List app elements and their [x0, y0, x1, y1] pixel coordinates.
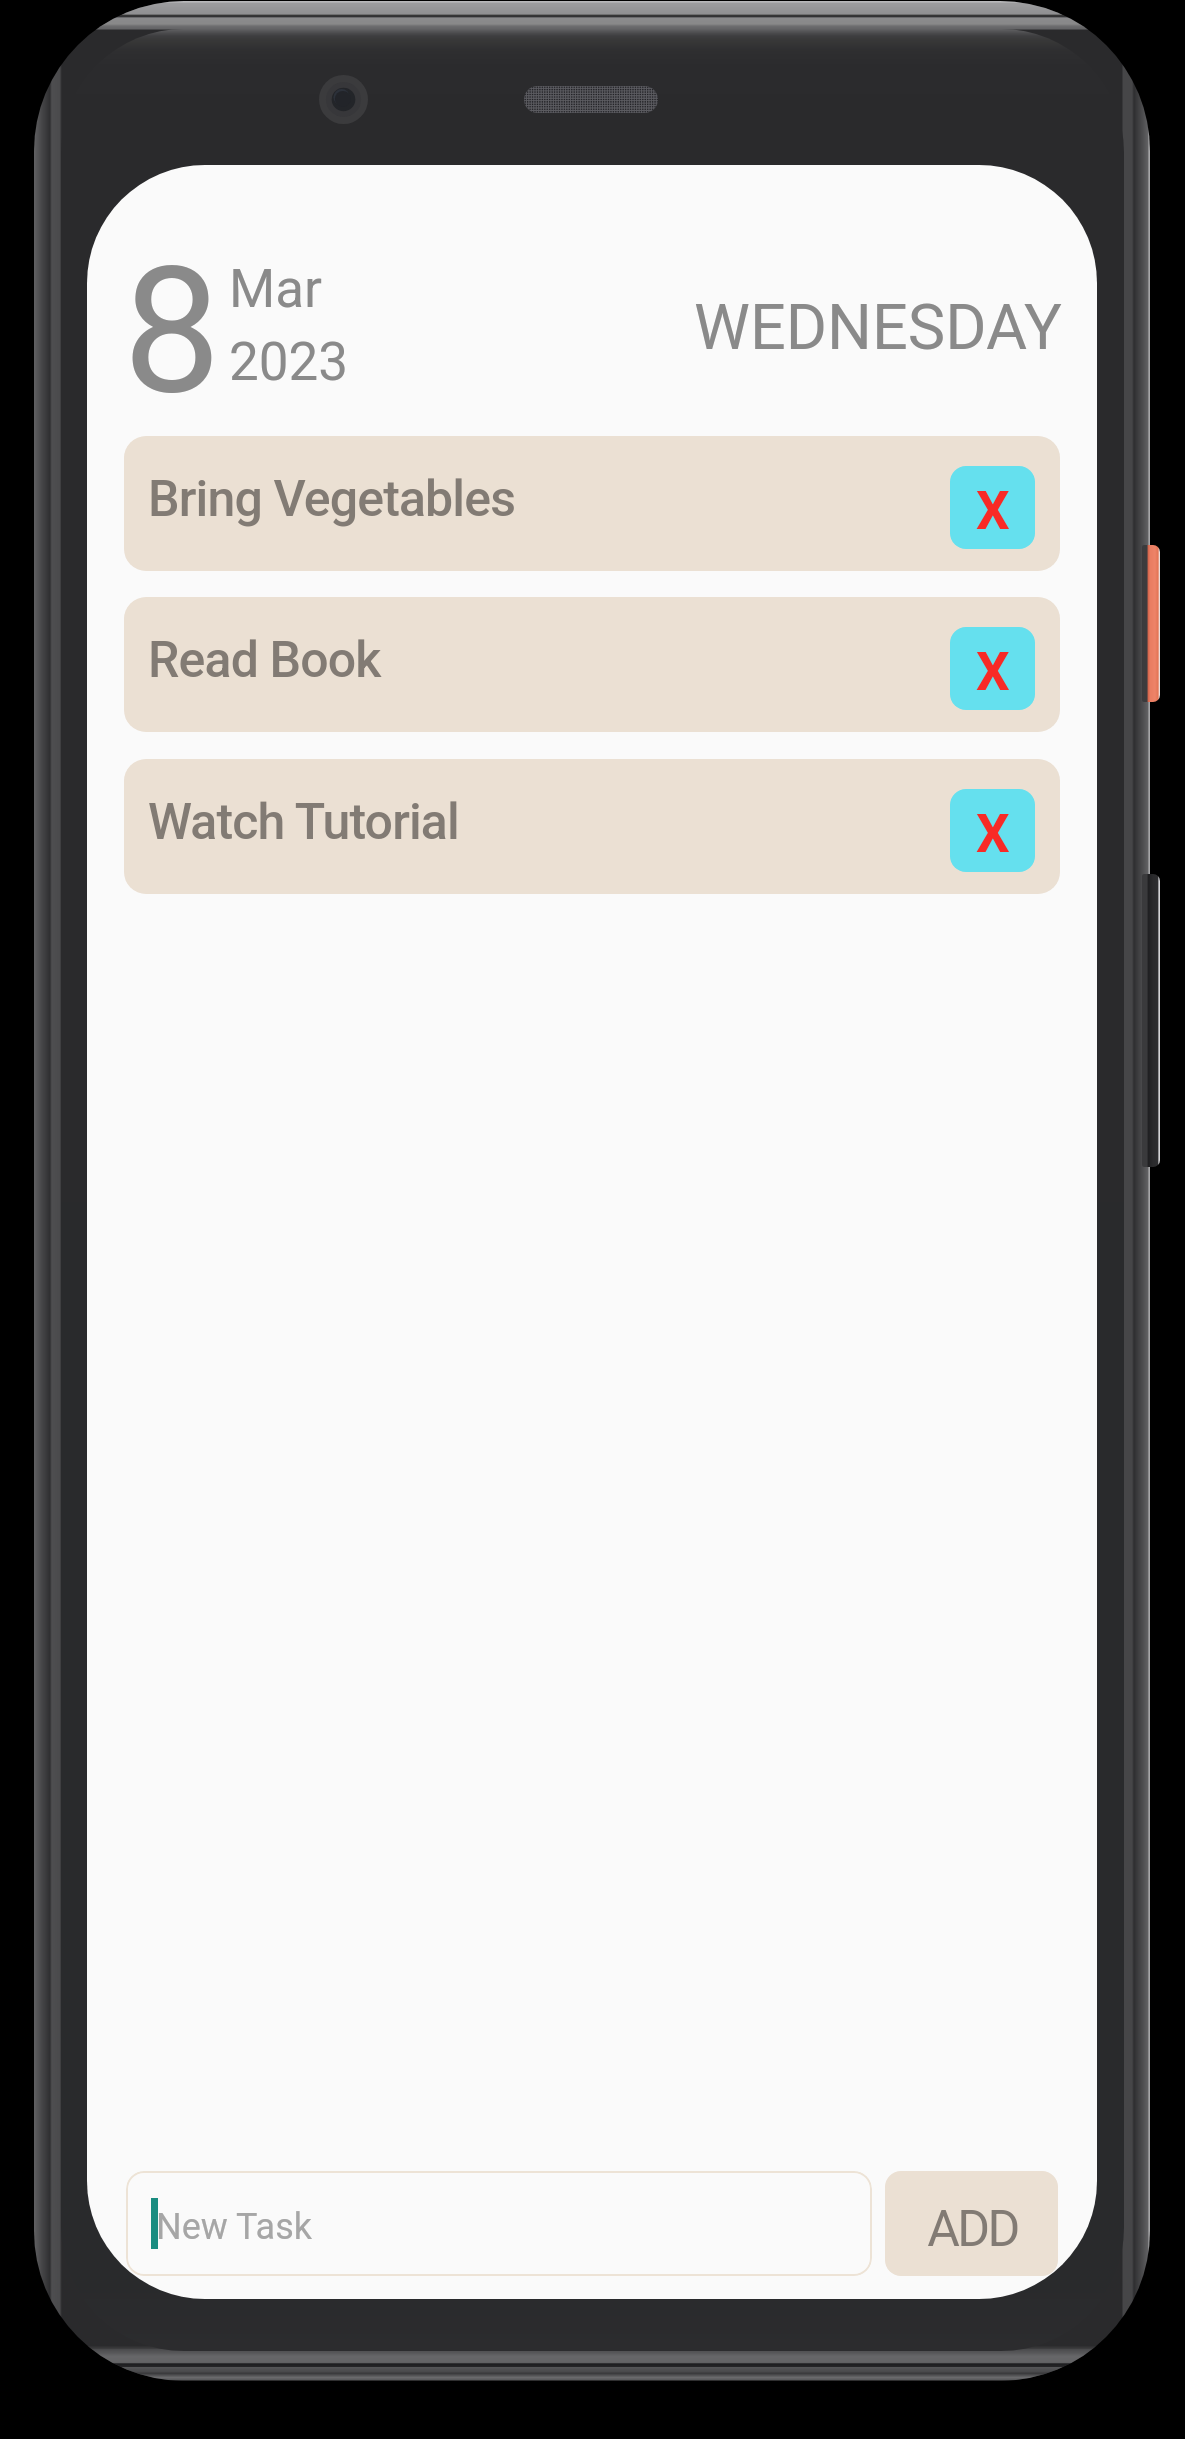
- staticText: ADD: [927, 2200, 1018, 2259]
- button[interactable]: Delete task: [950, 789, 1035, 872]
- button[interactable]: Delete task: [950, 627, 1035, 710]
- staticText: Read Book: [148, 631, 381, 690]
- button[interactable]: Bring Vegetables: [124, 436, 1060, 571]
- staticText: New Task: [156, 2206, 312, 2248]
- staticText: 8: [123, 230, 221, 434]
- staticText: Bring Vegetables: [148, 470, 516, 529]
- button[interactable]: Watch Tutorial: [124, 759, 1060, 894]
- staticText: 2023: [229, 331, 349, 393]
- staticText: X: [976, 480, 1010, 542]
- staticText: Watch Tutorial: [148, 793, 459, 852]
- button[interactable]: Delete task: [950, 466, 1035, 549]
- staticText: X: [976, 641, 1010, 703]
- staticText: Mar: [229, 258, 323, 320]
- button[interactable]: Read Book: [124, 597, 1060, 732]
- button[interactable]: New Task: [126, 2171, 872, 2276]
- staticText: X: [976, 803, 1010, 865]
- staticText: WEDNESDAY: [694, 291, 1062, 365]
- button[interactable]: ADD: [885, 2171, 1058, 2276]
